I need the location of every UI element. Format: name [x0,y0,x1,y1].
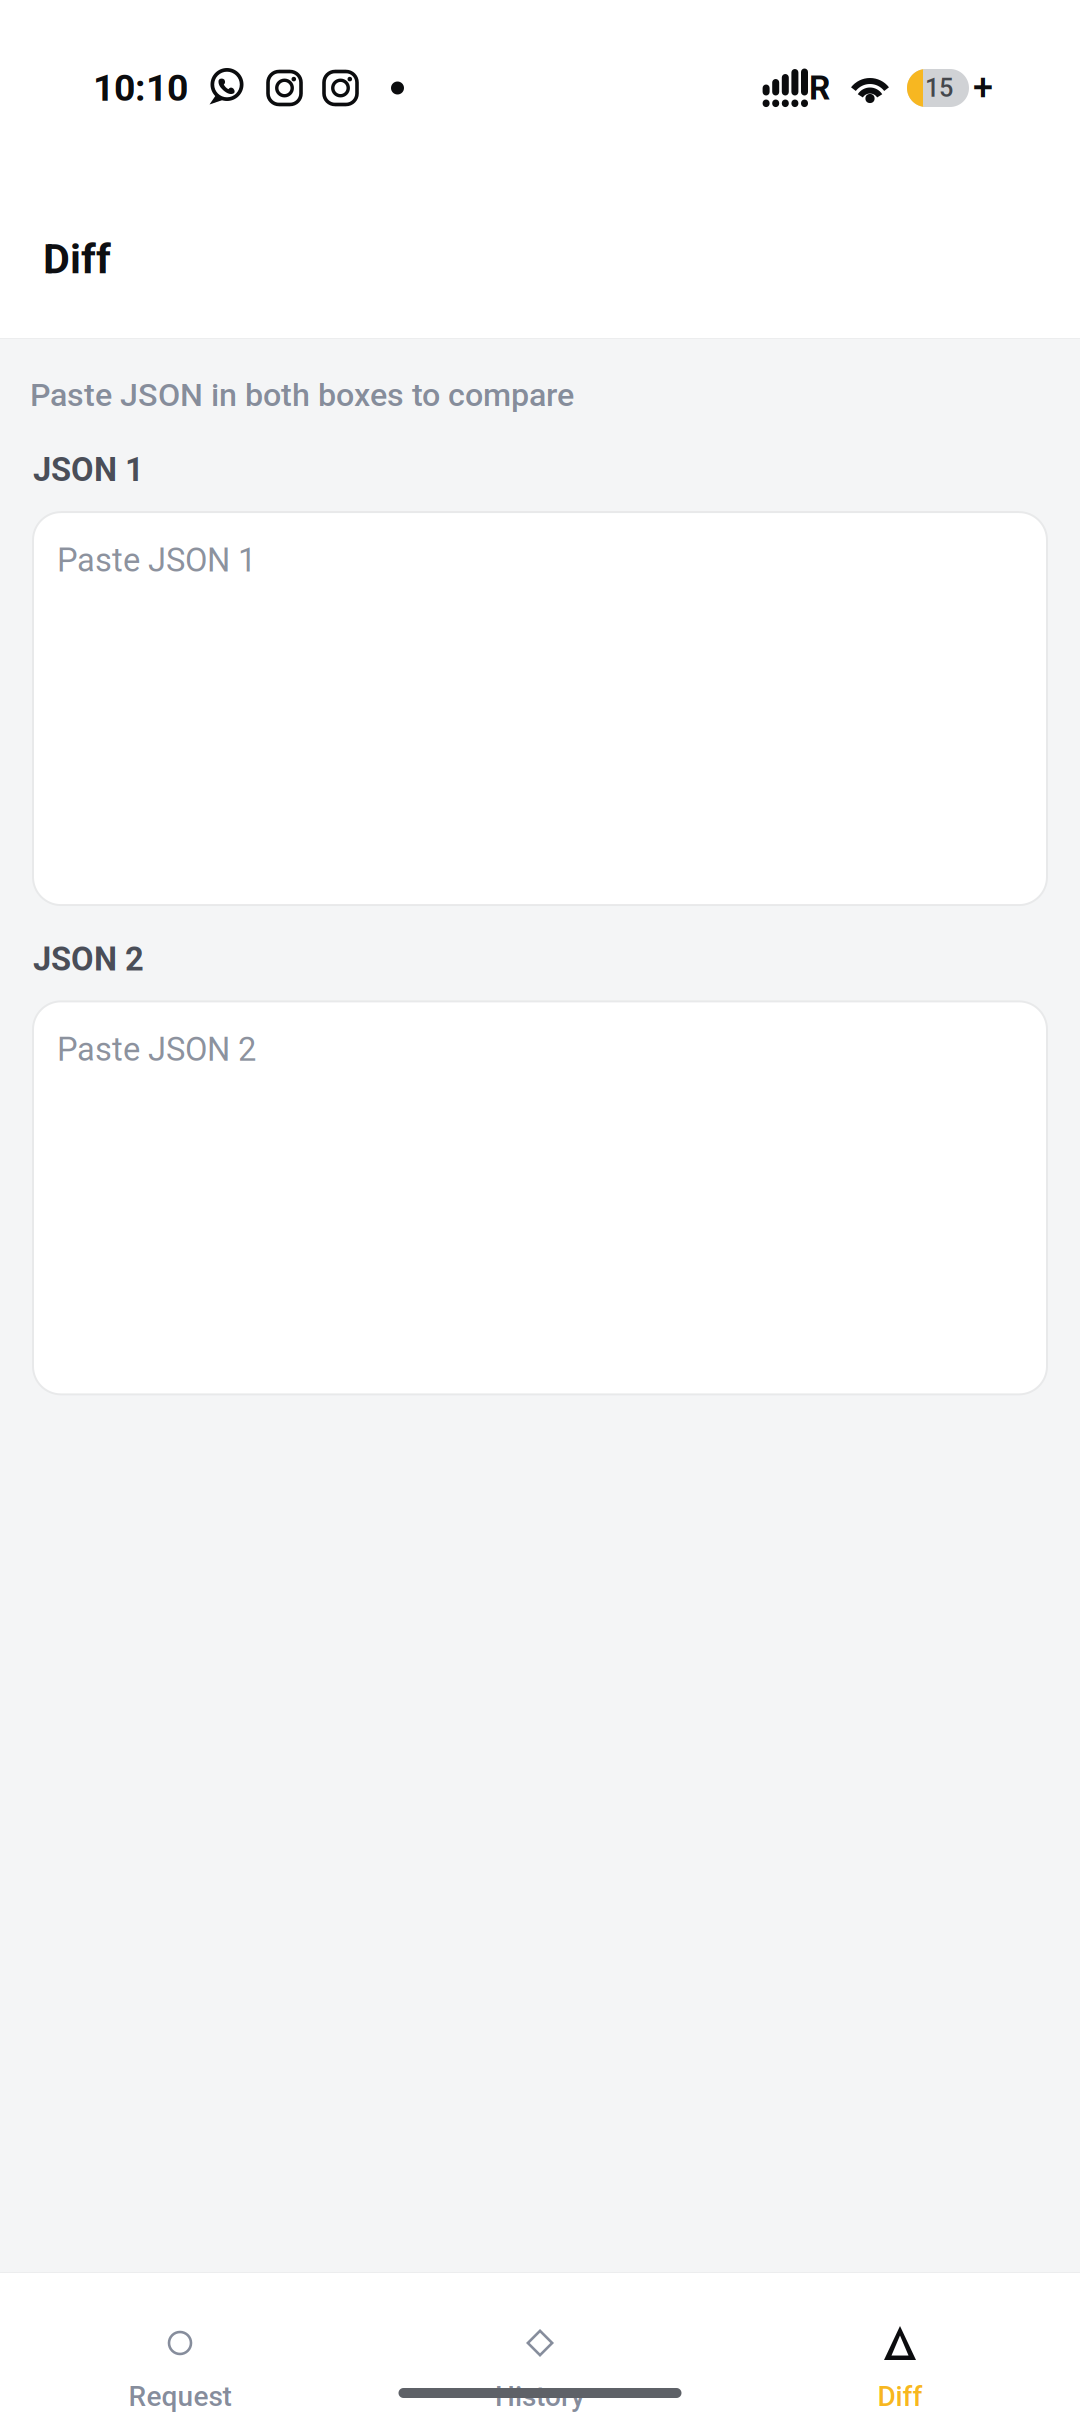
button[interactable]: Request [0,2325,360,2413]
staticText: History [495,2380,585,2413]
button[interactable]: Paste JSON 2 [33,1001,1047,1394]
staticText: + [973,67,993,109]
staticText: JSON 2 [33,940,144,978]
staticText: Paste JSON in both boxes to compare [30,376,574,414]
staticText: 15 [925,73,953,103]
staticText: Paste JSON 2 [57,1030,256,1069]
button[interactable]: Paste JSON 1 [33,512,1047,905]
staticText: Diff [43,235,111,283]
button[interactable]: Diff [720,2325,1080,2413]
staticText: R [809,68,830,108]
staticText: Request [128,2380,231,2413]
button[interactable]: History [360,2325,720,2413]
staticText: Diff [877,2380,922,2413]
staticText: Paste JSON 1 [57,541,256,579]
staticText: 10:10 [93,66,188,110]
staticText: JSON 1 [33,451,144,489]
